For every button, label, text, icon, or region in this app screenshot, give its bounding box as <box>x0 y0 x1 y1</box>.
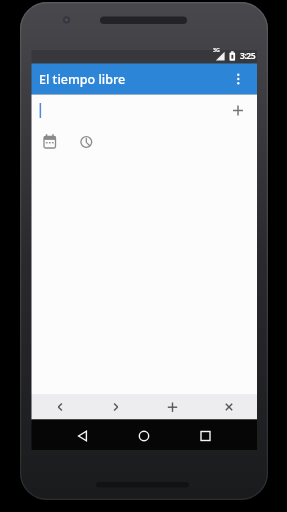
button[interactable] <box>76 130 97 152</box>
staticText: 3G <box>213 46 220 53</box>
button[interactable] <box>32 95 226 123</box>
staticText: El tiempo libre <box>39 71 126 88</box>
button[interactable] <box>38 130 60 152</box>
button[interactable] <box>68 420 98 450</box>
staticText: 3:25 <box>240 50 256 62</box>
button[interactable] <box>228 64 257 94</box>
button[interactable] <box>32 394 88 420</box>
button[interactable] <box>88 394 144 420</box>
button[interactable] <box>226 99 250 122</box>
button[interactable] <box>201 394 257 420</box>
button[interactable] <box>190 420 220 450</box>
button[interactable] <box>129 420 159 450</box>
button[interactable] <box>144 394 200 420</box>
